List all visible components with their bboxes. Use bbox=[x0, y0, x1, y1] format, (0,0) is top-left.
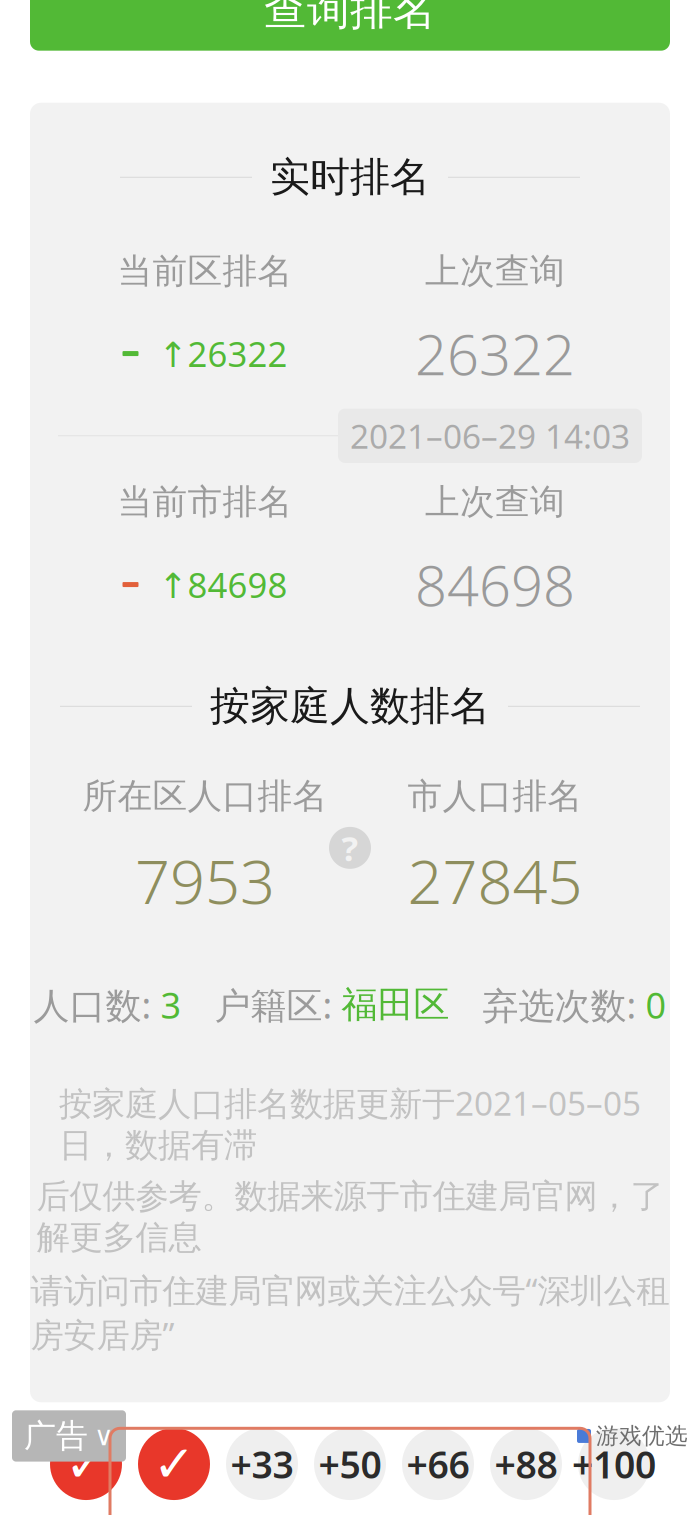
staticText: 市人口排名 bbox=[407, 775, 582, 817]
staticText: 按家庭人数排名 bbox=[210, 682, 490, 731]
staticText: 所在区人口排名 bbox=[82, 775, 327, 817]
staticText: 游戏优选 bbox=[596, 1422, 688, 1450]
staticText: 0 bbox=[645, 981, 666, 1029]
staticText: +100 bbox=[572, 1439, 656, 1489]
staticText: 人口数: bbox=[33, 981, 160, 1029]
staticText: 84698 bbox=[415, 547, 575, 622]
button[interactable]: 查询排名 bbox=[30, 0, 670, 51]
staticText: 请访问市住建局官网或关注公众号“深圳公租房安居房” bbox=[30, 1268, 669, 1356]
staticText: 当前市排名 bbox=[117, 481, 292, 523]
staticText: 7953 bbox=[135, 839, 275, 921]
staticText: +66 bbox=[406, 1439, 469, 1489]
button[interactable]: +66 bbox=[394, 1428, 482, 1515]
staticText: 第7天 bbox=[573, 1514, 655, 1515]
staticText: ? bbox=[341, 825, 358, 871]
staticText: 查询排名 bbox=[264, 0, 436, 36]
button[interactable]: +88 bbox=[482, 1428, 570, 1515]
staticText: 上次查询 bbox=[425, 481, 565, 523]
staticText: 27845 bbox=[407, 839, 582, 921]
staticText: 上次查询 bbox=[425, 250, 565, 292]
staticText: +50 bbox=[318, 1439, 381, 1489]
button[interactable]: +100 bbox=[570, 1428, 658, 1515]
staticText: ✓ bbox=[153, 1435, 195, 1493]
staticText: 按家庭人口排名数据更新于2021–05–05日，数据有滞 bbox=[59, 1081, 641, 1166]
staticText: 广告 bbox=[24, 1416, 88, 1456]
staticText: 弃选次数: bbox=[449, 981, 645, 1029]
button[interactable]: +33 bbox=[218, 1428, 306, 1515]
button[interactable]: +50 bbox=[306, 1428, 394, 1515]
staticText: +88 bbox=[494, 1439, 557, 1489]
button[interactable]: Help bbox=[322, 820, 378, 876]
staticText: ✓ bbox=[65, 1435, 107, 1493]
staticText: 2021–06–29 14:03 bbox=[350, 414, 630, 458]
staticText: 3 bbox=[160, 981, 181, 1029]
staticText: 户籍区: bbox=[181, 981, 341, 1029]
button[interactable]: ✓ bbox=[130, 1428, 218, 1515]
staticText: 后仅供参考。数据来源于市住建局官网，了解更多信息 bbox=[36, 1176, 663, 1258]
staticText: 26322 bbox=[415, 316, 575, 391]
staticText: 第1天 bbox=[45, 1514, 127, 1515]
staticText: 福田区 bbox=[341, 983, 449, 1027]
staticText: 实时排名 bbox=[270, 153, 430, 202]
button[interactable]: Advertisement bbox=[12, 1410, 126, 1462]
staticText: +33 bbox=[230, 1439, 293, 1489]
staticText: ↑26322 bbox=[158, 331, 287, 377]
button[interactable]: ✓ bbox=[42, 1428, 130, 1515]
staticText: ∨ bbox=[94, 1421, 114, 1451]
staticText: ↑84698 bbox=[158, 561, 287, 607]
staticText: 当前区排名 bbox=[117, 250, 292, 292]
